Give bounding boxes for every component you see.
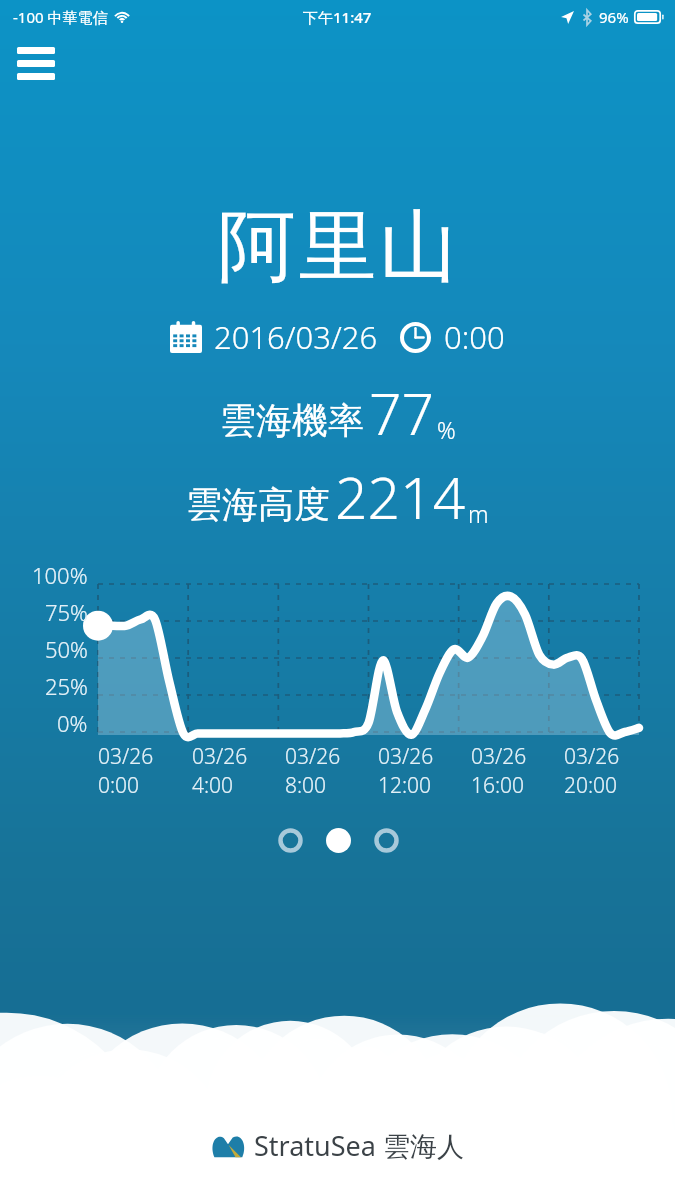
staticText: 03/26 <box>98 742 154 771</box>
staticText: 4:00 <box>192 771 234 800</box>
staticText: 96% <box>599 7 629 27</box>
staticText: 03/26 <box>471 742 527 771</box>
staticText: 0:00 <box>98 771 140 800</box>
button[interactable]: Menu <box>8 39 64 87</box>
staticText: 77 <box>369 374 435 452</box>
staticText: 阿里山 <box>216 198 459 296</box>
button[interactable]: Page 3 <box>362 816 410 864</box>
staticText: -100 中華電信 <box>13 7 108 27</box>
staticText: 75% <box>45 597 88 627</box>
staticText: 03/26 <box>564 742 620 771</box>
staticText: 12:00 <box>378 771 432 800</box>
staticText: 03/26 <box>192 742 248 771</box>
button[interactable]: Page 2 <box>314 816 362 864</box>
button[interactable]: Page 1 <box>266 816 314 864</box>
staticText: m <box>468 498 489 529</box>
staticText: 25% <box>45 671 88 701</box>
staticText: 雲海高度 <box>186 482 330 527</box>
staticText: 0:00 <box>444 316 505 358</box>
staticText: 2016/03/26 <box>214 316 378 358</box>
staticText: 50% <box>45 634 88 664</box>
staticText: 03/26 <box>285 742 341 771</box>
staticText: 2214 <box>335 458 466 536</box>
staticText: 20:00 <box>564 771 618 800</box>
staticText: 100% <box>32 560 88 590</box>
staticText: 03/26 <box>378 742 434 771</box>
staticText: 雲海機率 <box>220 398 364 443</box>
staticText: 16:00 <box>471 771 525 800</box>
staticText: 8:00 <box>285 771 327 800</box>
staticText: StratuSea 雲海人 <box>254 1127 464 1164</box>
staticText: % <box>437 414 456 445</box>
staticText: 下午11:47 <box>303 7 372 27</box>
staticText: 0% <box>57 708 88 738</box>
